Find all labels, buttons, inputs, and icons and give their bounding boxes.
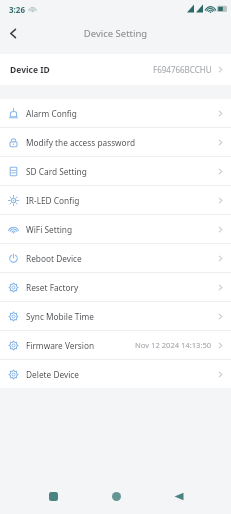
staticText: 3:26 (9, 4, 25, 15)
button[interactable]: Back (168, 485, 190, 507)
staticText: Firmware Version (26, 340, 95, 351)
staticText: Nov 12 2024 14:13:50 (135, 340, 212, 350)
button[interactable]: Modify the access password (0, 128, 231, 156)
button[interactable]: Device ID (0, 54, 231, 85)
button[interactable]: Sync Mobile Time (0, 302, 231, 330)
button[interactable]: IR-LED Config (0, 186, 231, 214)
staticText: Device Setting (0, 27, 231, 40)
button[interactable]: Alarm Config (0, 99, 231, 127)
staticText: F694766BCCHU (153, 64, 212, 75)
staticText: Reboot Device (26, 253, 82, 264)
button[interactable]: Reboot Device (0, 244, 231, 272)
button[interactable]: WiFi Setting (0, 215, 231, 243)
button[interactable]: Delete Device (0, 360, 231, 388)
staticText: WiFi Setting (26, 224, 73, 235)
button[interactable]: Reset Factory (0, 273, 231, 301)
staticText: IR-LED Config (26, 195, 80, 206)
button[interactable]: Back (0, 20, 26, 46)
button[interactable]: Recents (42, 485, 64, 507)
staticText: Delete Device (26, 369, 79, 380)
staticText: Reset Factory (26, 282, 79, 293)
button[interactable]: SD Card Setting (0, 157, 231, 185)
staticText: Alarm Config (26, 108, 77, 119)
button[interactable]: Firmware Version (0, 331, 231, 359)
button[interactable]: Home (105, 485, 127, 507)
staticText: SD Card Setting (26, 166, 87, 177)
staticText: Sync Mobile Time (26, 311, 95, 322)
staticText: Device ID (10, 64, 50, 76)
staticText: Modify the access password (26, 137, 136, 148)
